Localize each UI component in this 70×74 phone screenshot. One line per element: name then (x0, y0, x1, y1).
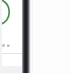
other: Progress (0, 0, 10, 25)
button[interactable]: w ▸ (0, 40, 22, 50)
staticText: w ▸ (1, 42, 11, 49)
button[interactable]: Progress (0, 0, 22, 74)
